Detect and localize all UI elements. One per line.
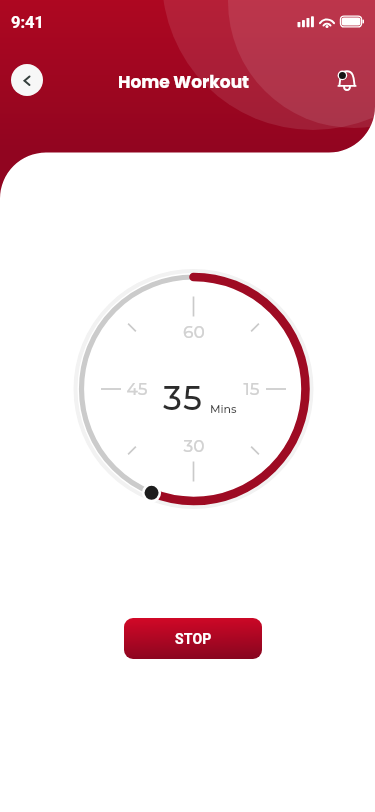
staticText: 45 <box>126 379 148 400</box>
staticText: 9:41 <box>11 13 45 32</box>
staticText: Home Workout <box>118 70 250 94</box>
button[interactable]: STOP <box>124 618 262 659</box>
staticText: 15 <box>243 379 260 400</box>
staticText: 30 <box>183 436 205 457</box>
staticText: STOP <box>175 631 212 647</box>
staticText: Mins <box>210 402 237 415</box>
button[interactable]: Back <box>11 64 43 96</box>
button[interactable]: Notifications <box>334 66 360 92</box>
staticText: 35 <box>163 378 204 418</box>
staticText: 60 <box>183 322 205 343</box>
